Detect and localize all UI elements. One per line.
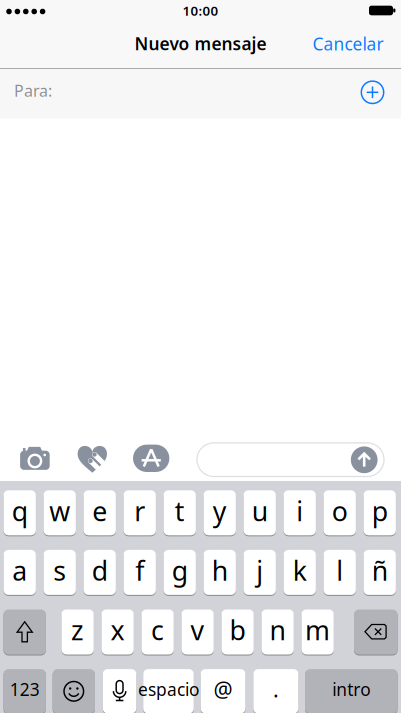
button[interactable]: z <box>61 609 94 655</box>
staticText: espacio <box>138 678 199 701</box>
staticText: intro <box>332 678 370 701</box>
staticText: z <box>71 612 84 648</box>
staticText: y <box>213 493 227 528</box>
staticText: s <box>53 553 66 588</box>
button[interactable]: x <box>101 609 134 655</box>
button[interactable]: a <box>3 549 36 595</box>
button[interactable]: espacio <box>143 669 194 713</box>
button[interactable]: t <box>163 490 196 536</box>
button[interactable]: i <box>283 490 316 536</box>
staticText: Nuevo mensaje <box>134 32 266 55</box>
staticText: w <box>49 493 70 528</box>
staticText: g <box>172 553 188 588</box>
staticText: q <box>12 493 28 528</box>
button[interactable]: j <box>243 549 276 595</box>
staticText: h <box>212 553 228 588</box>
button[interactable]: l <box>323 549 356 595</box>
button[interactable]: k <box>283 549 316 595</box>
staticText: ñ <box>372 553 388 588</box>
staticText: l <box>336 553 343 588</box>
staticText: r <box>134 493 145 528</box>
button[interactable]: p <box>363 490 396 536</box>
button[interactable]: Enviar <box>351 446 378 473</box>
button[interactable]: Borrar <box>354 609 398 655</box>
staticText: 123 <box>10 678 40 701</box>
button[interactable]: d <box>83 549 116 595</box>
button[interactable]: g <box>163 549 196 595</box>
staticText: i <box>296 493 303 528</box>
button[interactable]: @ <box>201 669 245 713</box>
button[interactable]: s <box>43 549 76 595</box>
staticText: a <box>12 553 27 588</box>
staticText: k <box>293 553 307 588</box>
button[interactable]: Emoji <box>53 669 95 713</box>
button[interactable]: y <box>203 490 236 536</box>
staticText: m <box>305 612 330 648</box>
staticText: f <box>135 553 144 588</box>
staticText: v <box>191 612 205 648</box>
staticText: e <box>92 493 107 528</box>
button[interactable]: Dictado <box>103 669 136 713</box>
button[interactable]: r <box>123 490 156 536</box>
button[interactable]: Cámara <box>15 441 55 477</box>
staticText: n <box>270 612 286 648</box>
button[interactable]: m <box>301 609 334 655</box>
button[interactable]: . <box>253 669 298 713</box>
button[interactable]: ñ <box>363 549 396 595</box>
button[interactable]: b <box>221 609 254 655</box>
staticText: t <box>175 493 185 528</box>
button[interactable]: c <box>141 609 174 655</box>
staticText: b <box>230 612 246 648</box>
button[interactable]: Digital Touch <box>72 441 112 477</box>
button[interactable]: e <box>83 490 116 536</box>
staticText: x <box>111 612 125 648</box>
button[interactable]: w <box>43 490 76 536</box>
staticText: . <box>273 675 279 703</box>
button[interactable]: intro <box>305 669 398 713</box>
staticText: o <box>332 493 348 528</box>
button[interactable]: Apps de iMessage <box>129 440 173 476</box>
staticText: u <box>252 493 268 528</box>
button[interactable]: q <box>3 490 36 536</box>
button[interactable]: f <box>123 549 156 595</box>
button[interactable]: Añadir contacto <box>354 74 390 110</box>
button[interactable]: 123 <box>3 669 46 713</box>
button[interactable]: Cancelar <box>288 27 401 61</box>
staticText: Para: <box>14 80 52 101</box>
button[interactable]: u <box>243 490 276 536</box>
button[interactable]: h <box>203 549 236 595</box>
button[interactable]: Mayúsculas <box>3 609 46 655</box>
button[interactable]: n <box>261 609 294 655</box>
staticText: @ <box>214 675 233 703</box>
staticText: Cancelar <box>312 32 383 55</box>
staticText: 10:00 <box>182 2 218 19</box>
staticText: d <box>92 553 108 588</box>
staticText: p <box>372 493 388 528</box>
staticText: c <box>151 612 164 648</box>
button[interactable]: v <box>181 609 214 655</box>
button[interactable]: o <box>323 490 356 536</box>
staticText: j <box>256 553 263 588</box>
